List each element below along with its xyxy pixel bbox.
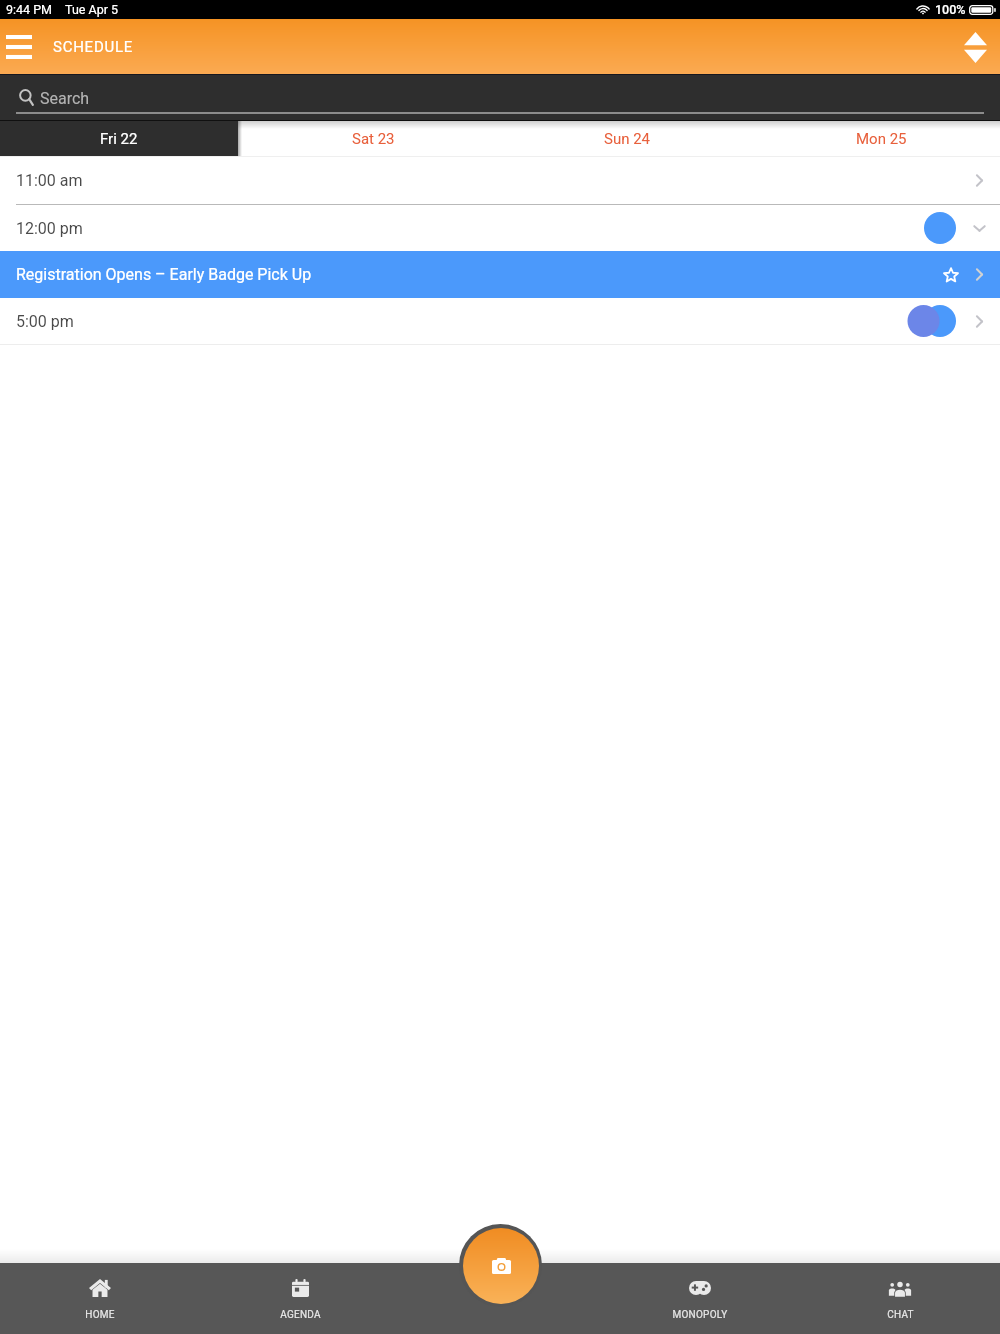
staticText: 11:00 am <box>16 171 83 190</box>
button[interactable]: Sort <box>958 30 992 64</box>
staticText: HOME <box>85 1309 115 1321</box>
button[interactable]: Fri 22 <box>0 121 238 156</box>
button[interactable]: Sun 24 <box>500 121 754 156</box>
staticText: Fri 22 <box>100 130 138 148</box>
button[interactable]: HOME <box>40 1263 160 1334</box>
button[interactable]: 5:00 pm <box>0 298 1000 344</box>
button[interactable]: Registration Opens – Early Badge Pick Up <box>0 251 1000 298</box>
button[interactable]: MONOPOLY <box>640 1263 760 1334</box>
staticText: 5:00 pm <box>16 312 74 331</box>
button[interactable]: 12:00 pm <box>0 205 1000 251</box>
staticText: Tue Apr 5 <box>65 2 119 17</box>
staticText: Sat 23 <box>352 130 395 148</box>
staticText: Search <box>40 89 90 108</box>
staticText: AGENDA <box>280 1309 321 1321</box>
other: Favourite <box>943 267 959 283</box>
button[interactable]: CHAT <box>840 1263 960 1334</box>
button[interactable]: AGENDA <box>240 1263 360 1334</box>
button[interactable]: Open navigation menu <box>3 31 35 63</box>
button[interactable]: Mon 25 <box>754 121 1000 156</box>
button[interactable]: Take a photo <box>459 1224 542 1307</box>
staticText: SCHEDULE <box>53 38 134 56</box>
staticText: 12:00 pm <box>16 219 83 238</box>
staticText: Registration Opens – Early Badge Pick Up <box>16 265 312 284</box>
staticText: 9:44 PM <box>6 2 53 17</box>
staticText: MONOPOLY <box>672 1309 728 1321</box>
staticText: 100% <box>935 2 966 17</box>
staticText: CHAT <box>887 1309 914 1321</box>
button[interactable]: 11:00 am <box>0 157 1000 204</box>
staticText: Sun 24 <box>604 130 651 148</box>
staticText: Mon 25 <box>856 130 907 148</box>
button[interactable]: Sat 23 <box>246 121 500 156</box>
